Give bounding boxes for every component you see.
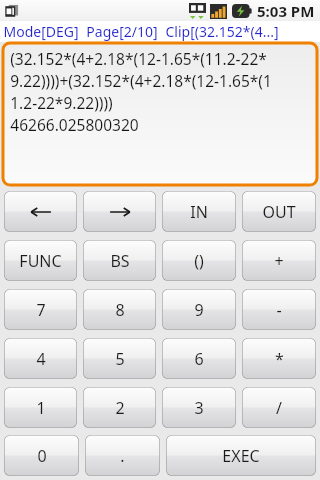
button[interactable]: 7 — [4, 289, 77, 330]
staticText: 3 — [194, 397, 204, 419]
button[interactable]: . — [85, 435, 160, 476]
staticText: 46266.025800320 — [10, 114, 139, 135]
staticText: / — [276, 397, 282, 419]
button[interactable]: IN — [162, 191, 236, 232]
staticText: 4 — [36, 348, 46, 370]
button[interactable]: 0 — [4, 435, 79, 476]
button[interactable]: OUT — [242, 191, 316, 232]
button[interactable]: 8 — [83, 289, 156, 330]
staticText: FUNC — [19, 250, 62, 272]
staticText: 2 — [115, 397, 125, 419]
staticText: - — [276, 299, 282, 321]
button[interactable]: * — [242, 338, 316, 379]
staticText: 7 — [36, 299, 46, 321]
button[interactable]: Left — [4, 191, 77, 232]
staticText: 0 — [37, 445, 47, 467]
staticText: + — [274, 250, 284, 272]
staticText: . — [120, 445, 125, 467]
staticText: Mode[DEG] — [3, 22, 79, 41]
staticText: 8 — [115, 299, 125, 321]
button[interactable]: 6 — [162, 338, 236, 379]
button[interactable]: - — [242, 289, 316, 330]
staticText: () — [194, 250, 204, 272]
staticText: Clip[(32.152*(4...] — [165, 22, 279, 41]
button[interactable]: 2 — [83, 387, 156, 428]
button[interactable]: 4 — [4, 338, 77, 379]
button[interactable]: EXEC — [166, 435, 316, 476]
staticText: (32.152*(4+2.18*(12-1.65*(11.2-22* — [10, 48, 267, 69]
staticText: 6 — [194, 348, 204, 370]
staticText: IN — [190, 201, 208, 223]
button[interactable]: () — [162, 240, 236, 281]
button[interactable]: FUNC — [4, 240, 77, 281]
button[interactable]: 9 — [162, 289, 236, 330]
button[interactable]: 3 — [162, 387, 236, 428]
staticText: 1 — [36, 397, 46, 419]
button[interactable]: Right — [83, 191, 156, 232]
staticText: BS — [110, 250, 130, 272]
staticText: 9.22))))+(32.152*(4+2.18*(12-1.65*(1 — [10, 70, 272, 91]
staticText: * — [275, 348, 284, 370]
button[interactable]: / — [242, 387, 316, 428]
button[interactable]: + — [242, 240, 316, 281]
button[interactable]: 5 — [83, 338, 156, 379]
staticText: OUT — [262, 201, 296, 223]
staticText: EXEC — [222, 445, 260, 467]
staticText: 9 — [194, 299, 204, 321]
button[interactable]: 1 — [4, 387, 77, 428]
staticText: 5:03 PM — [257, 1, 315, 21]
button[interactable]: (32.152*(4+2.18*(12-1.65*(11.2-22* — [3, 43, 317, 185]
staticText: Page[2/10] — [86, 22, 158, 41]
staticText: 1.2-22*9.22)))) — [10, 92, 113, 113]
button[interactable]: BS — [83, 240, 156, 281]
staticText: 5 — [115, 348, 125, 370]
